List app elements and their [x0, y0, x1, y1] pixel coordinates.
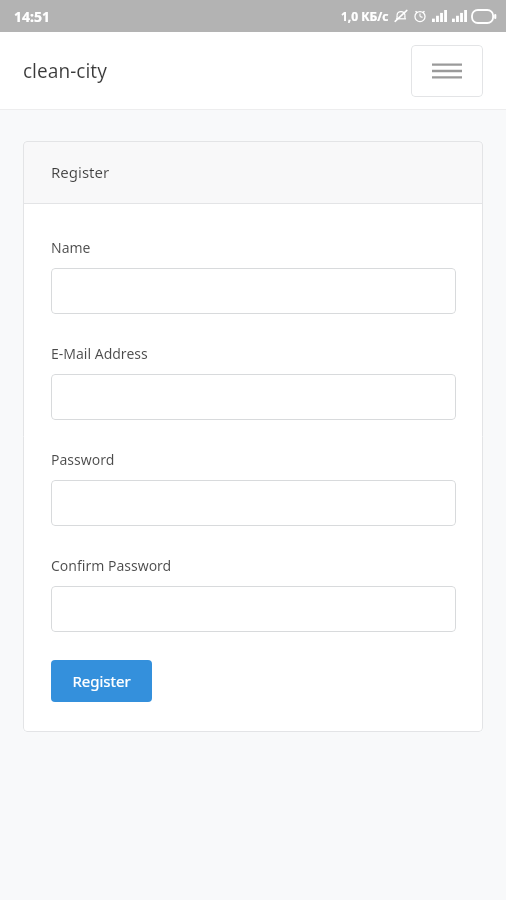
staticText: Name [51, 238, 91, 257]
button[interactable] [51, 586, 456, 632]
button[interactable] [51, 374, 456, 420]
staticText: E-Mail Address [51, 344, 148, 363]
button[interactable]: Open navigation menu [411, 45, 483, 97]
staticText: 14:51 [14, 7, 50, 26]
staticText: Register [72, 671, 131, 691]
staticText: Password [51, 450, 115, 469]
button[interactable] [51, 268, 456, 314]
button[interactable]: Register [51, 660, 152, 702]
staticText: 1,0 КБ/с [341, 8, 389, 24]
staticText: Register [51, 162, 110, 182]
staticText: clean-city [23, 58, 107, 84]
staticText: Confirm Password [51, 556, 172, 575]
button[interactable] [51, 480, 456, 526]
